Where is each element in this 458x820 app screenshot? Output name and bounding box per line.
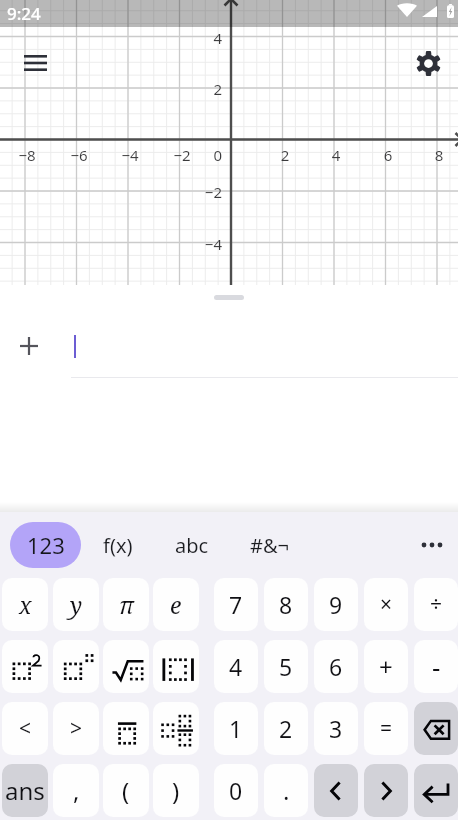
staticText: ans <box>5 774 45 807</box>
button[interactable]: Add expression <box>13 330 45 362</box>
staticText: 9:24 <box>7 2 41 25</box>
staticText: - <box>432 649 441 684</box>
button[interactable]: Settings <box>406 41 450 85</box>
button[interactable]: More options <box>410 523 454 567</box>
staticText: 8 <box>409 145 458 165</box>
staticText: 0 <box>229 775 243 806</box>
button[interactable]: 0 <box>214 764 258 817</box>
staticText: e <box>170 589 182 620</box>
staticText: 0 <box>171 145 222 165</box>
button[interactable]: #&¬ <box>236 522 302 568</box>
button[interactable]: 2 <box>264 702 308 755</box>
button[interactable]: π <box>103 578 149 631</box>
button[interactable]: × <box>364 578 408 631</box>
staticText: > <box>70 714 83 743</box>
button[interactable]: ) <box>153 764 199 817</box>
button[interactable]: y <box>53 578 99 631</box>
button[interactable]: Square <box>2 640 48 693</box>
staticText: 123 <box>27 530 65 560</box>
staticText: −4 <box>100 145 160 165</box>
staticText: 2 <box>171 79 222 99</box>
button[interactable]: Fraction <box>153 702 199 755</box>
button[interactable]: 7 <box>214 578 258 631</box>
button[interactable]: f(x) <box>92 522 143 568</box>
staticText: × <box>380 590 393 619</box>
staticText: #&¬ <box>250 532 289 559</box>
button[interactable]: 1 <box>214 702 258 755</box>
staticText: 1 <box>229 713 243 744</box>
button[interactable]: abc <box>164 522 220 568</box>
staticText: ÷ <box>430 590 443 619</box>
staticText: ( <box>122 774 130 807</box>
staticText: ) <box>172 774 180 807</box>
button[interactable]: 9 <box>314 578 358 631</box>
button[interactable]: Square root <box>103 640 149 693</box>
button[interactable]: ÷ <box>414 578 458 631</box>
staticText: . <box>283 774 290 807</box>
button[interactable]: Enter <box>414 764 458 817</box>
staticText: 6 <box>358 145 418 165</box>
button[interactable]: Move left <box>314 764 358 817</box>
staticText: < <box>19 714 32 743</box>
staticText: f(x) <box>103 532 133 559</box>
button[interactable]: 4 <box>214 640 258 693</box>
staticText: −2 <box>152 145 212 165</box>
staticText: x <box>19 589 32 620</box>
staticText: −2 <box>171 182 222 202</box>
staticText: 3 <box>329 713 343 744</box>
button[interactable]: 5 <box>264 640 308 693</box>
staticText: abc <box>175 532 209 559</box>
button[interactable]: Backspace <box>414 702 458 755</box>
staticText: 2 <box>255 145 315 165</box>
button[interactable]: x <box>2 578 48 631</box>
button[interactable]: . <box>264 764 308 817</box>
button[interactable]: 123 <box>10 522 81 568</box>
staticText: 8 <box>279 589 293 620</box>
button[interactable]: 8 <box>264 578 308 631</box>
button[interactable]: > <box>53 702 99 755</box>
button[interactable]: Absolute value <box>153 640 199 693</box>
button[interactable]: Repeating decimal <box>103 702 149 755</box>
button[interactable]: = <box>364 702 408 755</box>
button[interactable]: - <box>414 640 458 693</box>
staticText: 5 <box>279 651 293 682</box>
staticText: π <box>119 589 134 620</box>
staticText: 9 <box>329 589 343 620</box>
button[interactable]: Power <box>53 640 99 693</box>
staticText: 4 <box>171 28 222 48</box>
staticText: 4 <box>306 145 366 165</box>
button[interactable]: ( <box>103 764 149 817</box>
button[interactable]: ans <box>2 764 48 817</box>
button[interactable]: e <box>153 578 199 631</box>
staticText: y <box>70 589 83 620</box>
staticText: 2 <box>279 713 293 744</box>
button[interactable]: , <box>53 764 99 817</box>
staticText: 7 <box>229 589 243 620</box>
button[interactable]: 6 <box>314 640 358 693</box>
button[interactable]: Move right <box>364 764 408 817</box>
staticText: −8 <box>0 145 57 165</box>
staticText: + <box>379 650 393 683</box>
staticText: 4 <box>229 651 243 682</box>
staticText: = <box>380 714 393 743</box>
staticText: −4 <box>171 234 222 254</box>
staticText: 6 <box>329 651 343 682</box>
staticText: −6 <box>49 145 109 165</box>
button[interactable]: < <box>2 702 48 755</box>
button[interactable]: 3 <box>314 702 358 755</box>
button[interactable]: + <box>364 640 408 693</box>
staticText: , <box>73 774 80 807</box>
button[interactable]: Menu <box>13 41 57 85</box>
